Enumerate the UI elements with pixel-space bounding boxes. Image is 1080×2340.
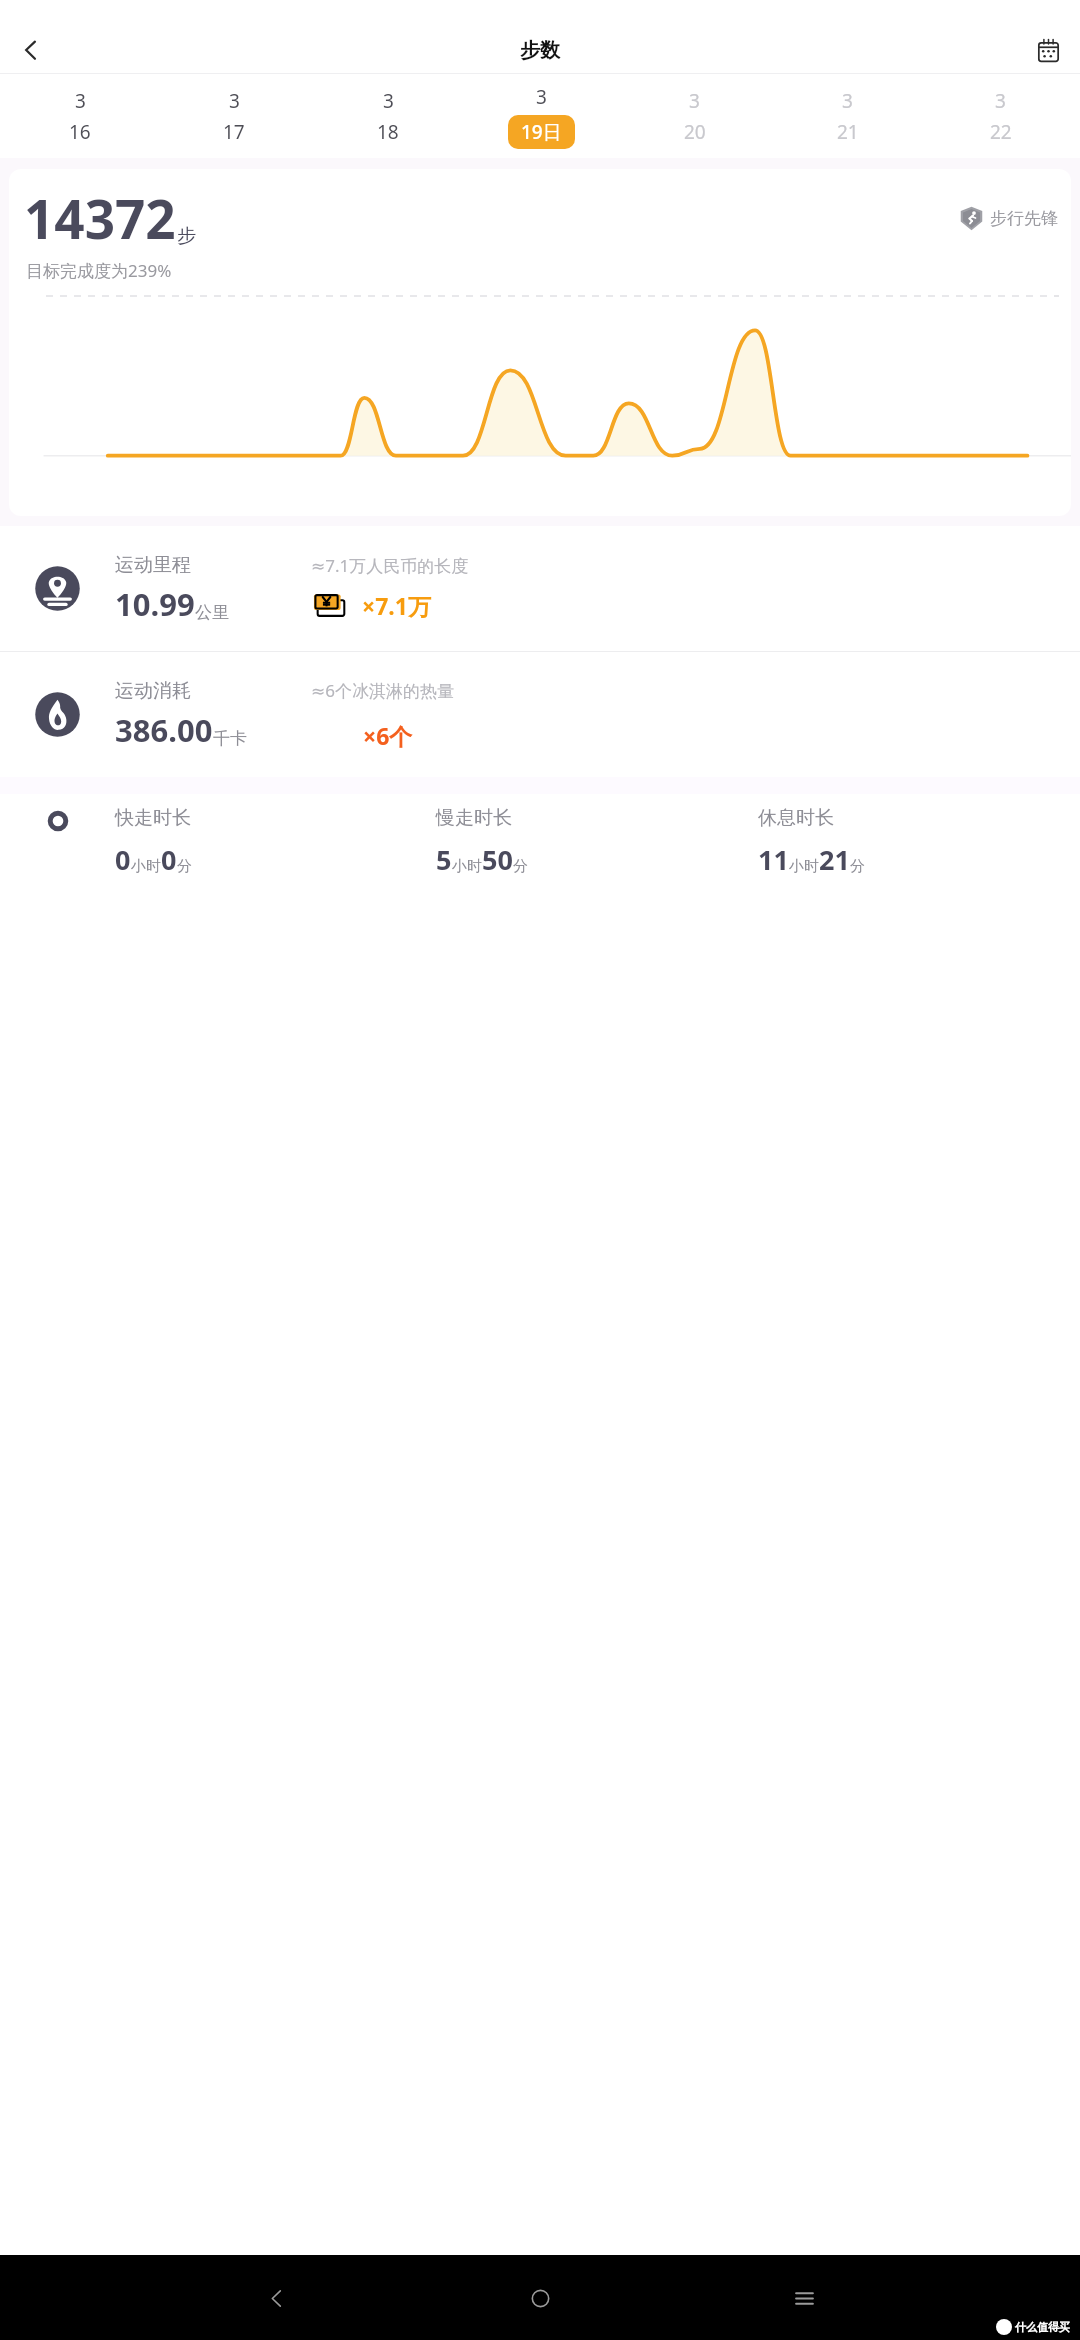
staticText: 18 xyxy=(377,119,399,145)
button[interactable]: 3 xyxy=(157,74,311,158)
staticText: 公里 xyxy=(195,602,229,623)
button[interactable]: Distance xyxy=(0,526,1080,651)
staticText: 0 xyxy=(115,841,131,878)
staticText: 步数 xyxy=(520,38,560,63)
staticText: 21 xyxy=(819,841,850,878)
staticText: ≈7.1万人民币的长度 xyxy=(311,554,469,577)
staticText: 22 xyxy=(990,119,1012,145)
staticText: 3 xyxy=(995,88,1006,114)
staticText: 11 xyxy=(758,841,789,878)
button[interactable]: Duration xyxy=(0,794,1080,880)
staticText: 运动里程 xyxy=(115,553,191,577)
staticText: 慢走时长 xyxy=(436,806,512,830)
button[interactable]: 3 xyxy=(618,74,771,158)
staticText: 小时 xyxy=(131,857,161,876)
other: Distance xyxy=(31,562,84,615)
staticText: 3 xyxy=(229,88,240,114)
staticText: 3 xyxy=(689,88,700,114)
staticText: 运动消耗 xyxy=(115,679,191,703)
staticText: 千卡 xyxy=(213,728,247,749)
staticText: 分 xyxy=(850,857,865,876)
staticText: 14372 xyxy=(24,182,176,254)
staticText: 17 xyxy=(223,119,245,145)
staticText: 目标完成度为239% xyxy=(26,259,172,282)
button[interactable]: 3 xyxy=(771,74,924,158)
button[interactable]: Menu xyxy=(776,2270,832,2326)
staticText: 386.00 xyxy=(115,709,213,751)
button[interactable]: 步行先锋 xyxy=(959,206,1058,231)
button[interactable]: Back xyxy=(248,2270,304,2326)
staticText: 休息时长 xyxy=(758,806,834,830)
button[interactable]: 3 xyxy=(3,74,157,158)
button[interactable]: Back xyxy=(9,28,53,72)
button[interactable]: 3 xyxy=(465,74,618,158)
staticText: 0 xyxy=(161,841,177,878)
button[interactable]: 3 xyxy=(924,74,1077,158)
staticText: 19日 xyxy=(521,119,562,145)
staticText: 3 xyxy=(75,88,86,114)
staticText: ×6个 xyxy=(363,720,413,751)
staticText: 3 xyxy=(536,84,547,110)
staticText: 50 xyxy=(482,841,513,878)
staticText: 16 xyxy=(69,119,91,145)
staticText: 5 xyxy=(436,841,452,878)
staticText: 快走时长 xyxy=(115,806,191,830)
staticText: 20 xyxy=(684,119,706,145)
staticText: ×7.1万 xyxy=(362,590,431,621)
other: Duration xyxy=(45,808,71,834)
other: Calories xyxy=(31,688,84,741)
staticText: 分 xyxy=(177,857,192,876)
staticText: ≈6个冰淇淋的热量 xyxy=(311,679,454,702)
staticText: 小时 xyxy=(452,857,482,876)
button[interactable]: 3 xyxy=(311,74,465,158)
staticText: 步行先锋 xyxy=(990,208,1058,229)
button[interactable]: Calories xyxy=(0,652,1080,777)
staticText: 什么值得买 xyxy=(1015,2320,1070,2334)
staticText: 3 xyxy=(383,88,394,114)
staticText: 21 xyxy=(837,119,859,145)
staticText: 小时 xyxy=(789,857,819,876)
staticText: 步 xyxy=(177,224,196,248)
button[interactable]: Calendar xyxy=(1026,28,1070,72)
staticText: 3 xyxy=(842,88,853,114)
button[interactable]: Home xyxy=(512,2270,568,2326)
button[interactable]: 14372 xyxy=(9,169,1071,516)
staticText: 分 xyxy=(513,857,528,876)
staticText: 10.99 xyxy=(115,583,195,625)
